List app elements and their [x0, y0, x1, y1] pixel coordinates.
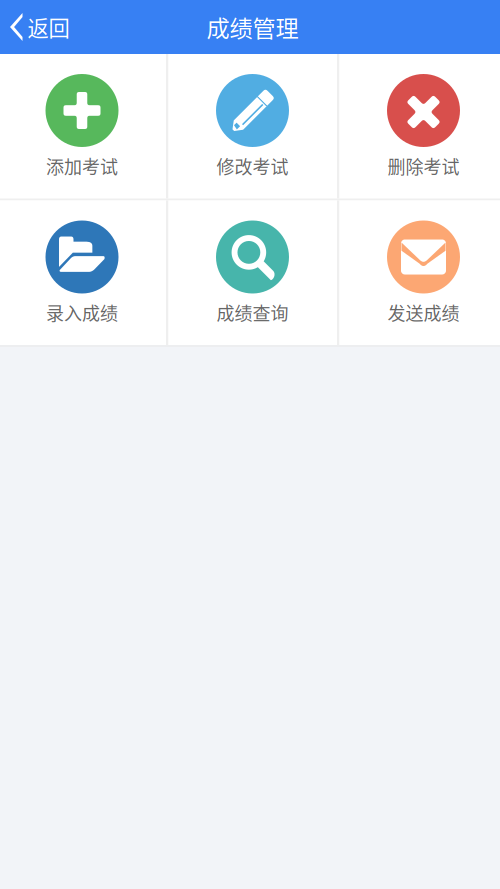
staticText: 删除考试: [387, 153, 459, 179]
staticText: 成绩管理: [206, 10, 298, 44]
staticText: 修改考试: [216, 153, 288, 179]
button[interactable]: 删除考试: [339, 54, 500, 198]
button[interactable]: 成绩查询: [168, 200, 337, 345]
staticText: 返回: [27, 12, 69, 42]
staticText: 添加考试: [46, 153, 118, 179]
button[interactable]: 添加考试: [0, 54, 166, 198]
button[interactable]: 修改考试: [168, 54, 337, 198]
staticText: 发送成绩: [387, 299, 459, 326]
button[interactable]: 返回: [0, 0, 81, 54]
button[interactable]: 录入成绩: [0, 200, 166, 345]
staticText: 成绩查询: [216, 299, 288, 326]
button[interactable]: 发送成绩: [339, 200, 500, 345]
staticText: 录入成绩: [46, 299, 118, 326]
